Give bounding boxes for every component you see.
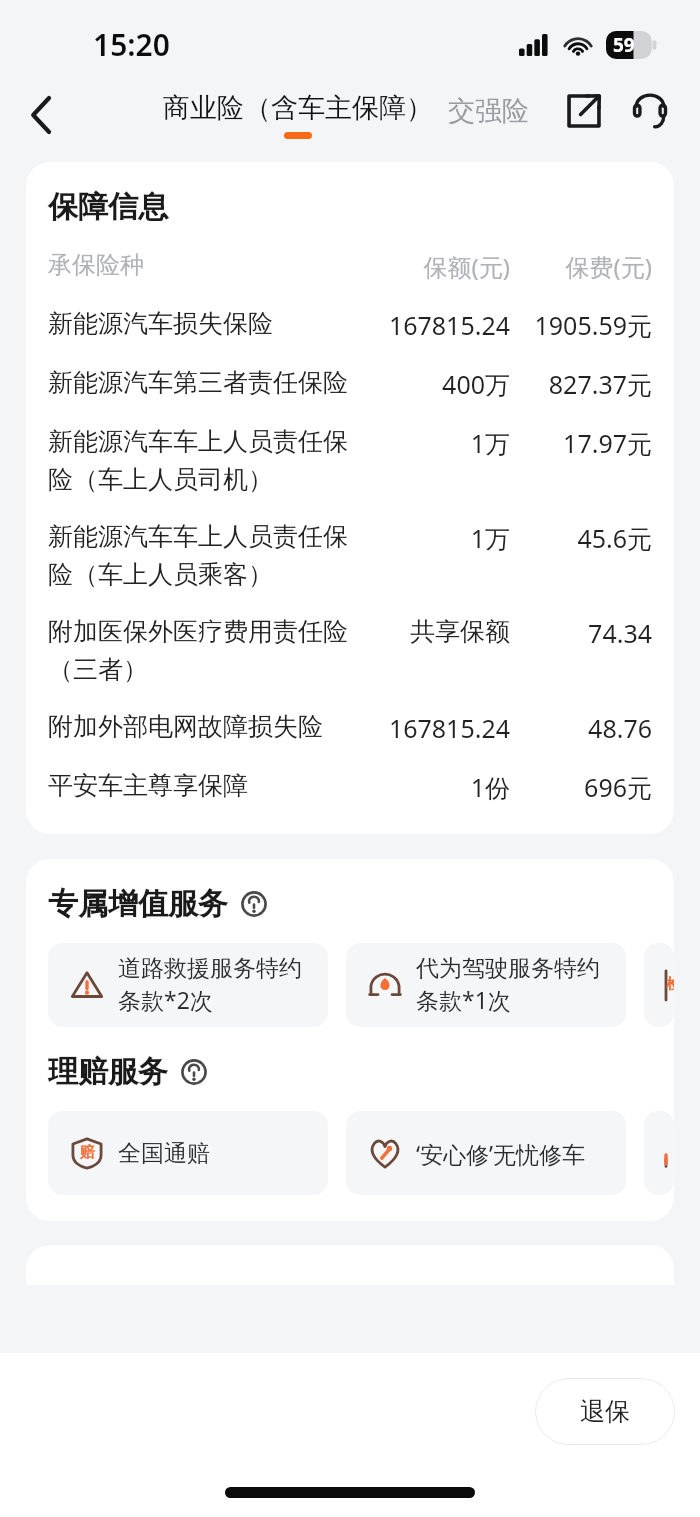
button[interactable]: 附加医保外医疗费用责任险（三者） [48,616,652,686]
staticText: 承保险种 [48,250,360,280]
button[interactable]: 代为驾驶服务特约 条款*1次 [346,943,626,1027]
staticText: 新能源汽车损失保险 [48,308,354,339]
staticText: 新能源汽车车上人员责任保险（车上人员乘客） [48,521,354,591]
staticText: 167815.24 [364,711,510,745]
staticText: ‘安心修’无忧修车 [416,1138,586,1169]
staticText: 17.97元 [510,426,652,460]
staticText: 新能源汽车车上人员责任保险（车上人员司机） [48,426,354,496]
staticText: 400万 [364,367,510,401]
staticText: 1905.59元 [510,308,652,342]
button[interactable] [644,1111,674,1195]
staticText: 696元 [510,770,652,804]
staticText: 全国通赔 [118,1139,210,1168]
staticText: 交强险 [448,94,529,128]
staticText: 45.6元 [510,521,652,555]
staticText: 附加外部电网故障损失险 [48,711,354,742]
staticText: 1万 [364,426,510,460]
staticText: 代为驾驶服务特约 条款*1次 [416,954,600,1016]
button[interactable]: 交强险 [448,94,529,128]
staticText: 商业险（含车主保障） [163,91,433,125]
button[interactable]: ‘安心修’无忧修车 [346,1111,626,1195]
button[interactable]: 平安车主尊享保障 [48,770,652,804]
staticText: 保障信息 [48,188,168,226]
button[interactable]: 退保 [535,1378,675,1445]
staticText: 保额(元) [360,250,510,283]
button[interactable]: 检 [644,943,674,1027]
staticText: 道路救援服务特约 条款*2次 [118,954,302,1016]
staticText: 共享保额 [364,616,510,647]
button[interactable]: 客服 [622,83,678,139]
button[interactable]: 说明 [177,1055,211,1089]
button[interactable]: 新能源汽车损失保险 [48,308,652,342]
staticText: 附加医保外医疗费用责任险（三者） [48,616,354,686]
button[interactable]: 赔 [48,1111,328,1195]
staticText: 理赔服务 [48,1053,168,1091]
staticText: 167815.24 [364,308,510,342]
button[interactable]: 说明 [237,887,271,921]
button[interactable]: 商业险（含车主保障） [163,91,433,139]
button[interactable]: 返回 [10,85,74,145]
staticText: 48.76 [510,711,652,745]
button[interactable]: 新能源汽车车上人员责任保险（车上人员乘客） [48,521,652,591]
staticText: 新能源汽车第三者责任保险 [48,367,354,398]
staticText: 15:20 [93,24,170,65]
button[interactable]: 附加外部电网故障损失险 [48,711,652,745]
staticText: 59 [613,32,635,58]
staticText: 保费(元) [510,250,652,283]
staticText: 74.34 [510,616,652,650]
button[interactable]: 新能源汽车车上人员责任保险（车上人员司机） [48,426,652,496]
staticText: 专属增值服务 [48,885,228,923]
button[interactable]: 新能源汽车第三者责任保险 [48,367,652,401]
staticText: 平安车主尊享保障 [48,770,354,801]
button[interactable]: 道路救援服务特约 条款*2次 [48,943,328,1027]
staticText: 赔 [80,1143,95,1162]
staticText: 退保 [580,1396,630,1427]
staticText: 827.37元 [510,367,652,401]
button[interactable]: 分享 [556,83,612,139]
staticText: 1份 [364,770,510,804]
staticText: 1万 [364,521,510,555]
